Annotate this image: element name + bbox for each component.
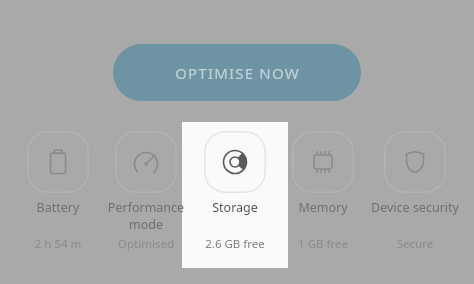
staticText: Performance mode	[94, 199, 198, 232]
staticText: 2.6 GB free	[183, 236, 287, 252]
staticText: OPTIMISE NOW	[175, 63, 300, 83]
button[interactable]: Device security	[363, 131, 467, 252]
staticText: Battery	[6, 199, 110, 216]
button[interactable]: Storage	[183, 131, 287, 252]
staticText: Device security	[363, 199, 467, 216]
staticText: Memory	[271, 199, 375, 216]
staticText: 1 GB free	[271, 236, 375, 252]
button[interactable]: Performance mode	[94, 131, 198, 252]
button[interactable]: Battery	[6, 131, 110, 252]
button[interactable]: OPTIMISE NOW	[113, 44, 361, 101]
staticText: Storage	[183, 199, 287, 216]
staticText: 2 h 54 m	[6, 236, 110, 252]
button[interactable]: Memory	[271, 131, 375, 252]
staticText: Optimised	[94, 236, 198, 252]
staticText: Secure	[363, 236, 467, 252]
